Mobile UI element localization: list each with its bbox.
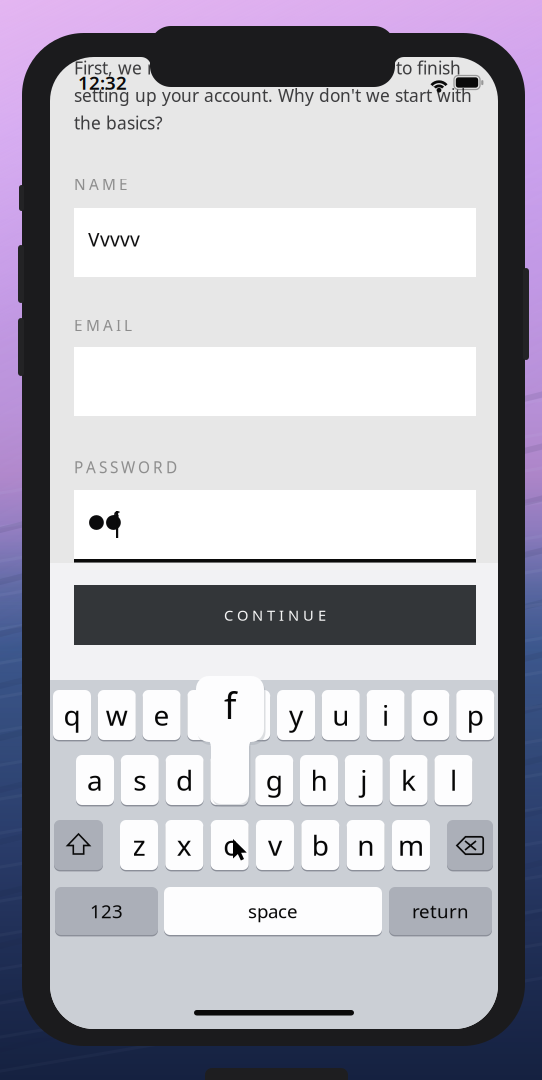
button[interactable]: return xyxy=(389,887,492,937)
button[interactable]: q xyxy=(53,690,91,742)
staticText: f xyxy=(112,505,119,532)
staticText: P A S S W O R D xyxy=(74,457,177,478)
staticText: e xyxy=(154,696,170,734)
staticText: space xyxy=(248,898,298,924)
button[interactable]: j xyxy=(345,755,383,807)
button[interactable]: s xyxy=(121,755,159,807)
button[interactable]: d xyxy=(166,755,204,807)
button[interactable]: r xyxy=(187,690,225,742)
staticText: j xyxy=(360,761,367,799)
staticText: First, we need a little more information… xyxy=(74,56,461,79)
button[interactable]: t xyxy=(232,690,270,742)
staticText: q xyxy=(63,696,80,734)
button[interactable]: p xyxy=(456,690,494,742)
button[interactable]: w xyxy=(98,690,136,742)
staticText: f xyxy=(224,680,236,729)
button[interactable]: n xyxy=(347,820,385,872)
button[interactable]: h xyxy=(300,755,338,807)
button[interactable]: c xyxy=(211,820,249,872)
staticText: w xyxy=(106,696,128,734)
staticText: d xyxy=(176,761,193,799)
staticText: v xyxy=(268,826,282,864)
staticText: y xyxy=(289,696,303,734)
button[interactable]: 123 xyxy=(55,887,158,937)
button[interactable]: a xyxy=(76,755,114,807)
button[interactable]: e xyxy=(143,690,181,742)
staticText: g xyxy=(266,761,283,799)
staticText: b xyxy=(312,826,329,864)
staticText: o xyxy=(422,696,439,734)
button[interactable]: Shift xyxy=(54,820,103,872)
staticText: N A M E xyxy=(74,174,128,195)
staticText: C O N T I N U E xyxy=(224,605,326,625)
staticText: m xyxy=(398,826,424,864)
staticText: n xyxy=(357,826,374,864)
button[interactable]: space xyxy=(164,887,382,937)
button[interactable]: l xyxy=(434,755,472,807)
staticText: 123 xyxy=(90,898,123,924)
staticText: Vvvvv xyxy=(88,226,140,252)
staticText: h xyxy=(310,761,327,799)
staticText: the basics? xyxy=(74,111,163,134)
staticText: p xyxy=(467,696,484,734)
staticText: return xyxy=(412,898,469,924)
staticText: k xyxy=(401,761,416,799)
button[interactable]: m xyxy=(392,820,430,872)
button[interactable]: Delete xyxy=(447,820,493,872)
staticText: 12:32 xyxy=(78,70,127,95)
button[interactable]: v xyxy=(256,820,294,872)
staticText: a xyxy=(87,761,103,799)
staticText: s xyxy=(133,761,146,799)
button[interactable]: o xyxy=(411,690,449,742)
staticText: c xyxy=(223,826,236,864)
button[interactable]: b xyxy=(301,820,339,872)
button[interactable]: g xyxy=(255,755,293,807)
staticText: z xyxy=(132,826,145,864)
staticText: l xyxy=(450,761,457,799)
staticText: x xyxy=(177,826,192,864)
button[interactable]: i xyxy=(367,690,405,742)
button[interactable]: x xyxy=(165,820,203,872)
button[interactable]: y xyxy=(277,690,315,742)
staticText: ●● xyxy=(88,510,122,532)
staticText: u xyxy=(332,696,349,734)
staticText: E M A I L xyxy=(74,315,132,336)
button[interactable]: u xyxy=(322,690,360,742)
button[interactable]: z xyxy=(120,820,158,872)
button[interactable]: k xyxy=(390,755,428,807)
staticText: i xyxy=(382,696,389,734)
button[interactable]: C O N T I N U E xyxy=(74,585,476,645)
button[interactable]: f xyxy=(210,755,248,807)
staticText: setting up your account. Why don't we st… xyxy=(74,83,472,107)
